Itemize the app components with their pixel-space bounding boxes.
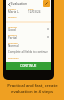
staticText: Patient <box>8 7 16 10</box>
staticText: Summary <box>8 56 19 59</box>
staticText: 12/03/24 <box>28 10 41 14</box>
staticText: Date <box>28 7 34 10</box>
staticText: Practical and fast, create <box>7 83 58 89</box>
staticText: Session <box>8 15 17 18</box>
staticText: Normal <box>8 44 19 48</box>
button[interactable]: Back <box>7 2 11 6</box>
staticText: Mobility <box>8 25 18 28</box>
staticText: Maria L. <box>8 10 20 14</box>
staticText: evaluation in 4 steps <box>11 89 53 95</box>
staticText: Partial <box>8 36 18 40</box>
staticText: Good <box>8 28 16 32</box>
staticText: Evaluation <box>11 2 27 6</box>
staticText: Balance <box>8 33 17 36</box>
button[interactable]: CONTINUE <box>6 62 51 70</box>
staticText: CONTINUE <box>20 64 37 68</box>
staticText: Strength <box>8 41 18 44</box>
staticText: Complete all fields to continue <box>8 50 48 54</box>
button[interactable]: Edit <box>43 0 50 7</box>
